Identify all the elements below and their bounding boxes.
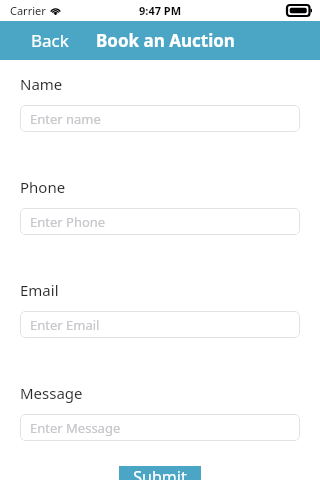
staticText: Message (20, 383, 83, 403)
staticText: Submit (133, 466, 187, 480)
staticText: Enter Email (30, 316, 100, 334)
button[interactable]: Enter Phone (20, 208, 300, 235)
staticText: Phone (20, 177, 66, 197)
staticText: Enter Phone (30, 213, 106, 231)
staticText: Carrier (10, 3, 46, 18)
button[interactable]: Submit (119, 466, 201, 480)
button[interactable]: Enter Email (20, 311, 300, 338)
staticText: Email (20, 280, 59, 300)
staticText: Name (20, 74, 63, 94)
button[interactable]: Enter Message (20, 414, 300, 441)
staticText: Enter name (30, 110, 101, 128)
staticText: Book an Auction (96, 29, 235, 52)
staticText: Enter Message (30, 419, 121, 437)
button[interactable]: Back (20, 23, 80, 58)
staticText: Back (31, 29, 69, 52)
button[interactable]: Enter name (20, 105, 300, 132)
staticText: 9:47 PM (139, 3, 182, 18)
